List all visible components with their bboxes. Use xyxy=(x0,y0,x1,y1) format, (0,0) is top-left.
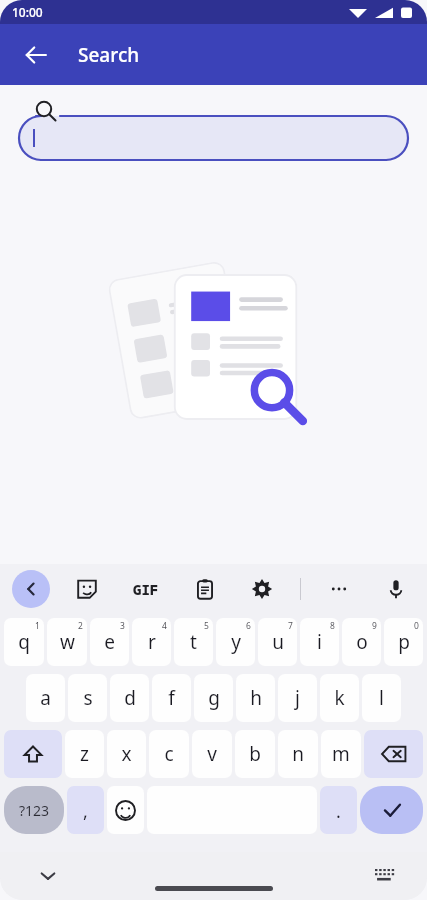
staticText: s xyxy=(83,685,93,711)
button[interactable]: Back xyxy=(14,33,58,77)
button[interactable]: a xyxy=(26,674,65,722)
button[interactable]: d xyxy=(110,674,149,722)
button[interactable]: , xyxy=(67,786,104,834)
button[interactable]: Hide keyboard xyxy=(28,856,68,896)
staticText: t xyxy=(190,629,197,655)
staticText: v xyxy=(207,741,217,767)
staticText: 2 xyxy=(78,620,83,632)
staticText: l xyxy=(379,685,384,711)
button[interactable]: More options xyxy=(320,570,358,608)
button[interactable]: . xyxy=(320,786,357,834)
button[interactable]: l xyxy=(362,674,401,722)
button[interactable]: m xyxy=(321,730,361,778)
staticText: 3 xyxy=(120,620,125,632)
staticText: 6 xyxy=(246,620,251,632)
staticText: x xyxy=(121,741,132,767)
button[interactable]: c xyxy=(149,730,189,778)
staticText: k xyxy=(334,685,345,711)
staticText: GIF xyxy=(133,580,159,599)
button[interactable]: e xyxy=(90,618,129,666)
staticText: b xyxy=(249,741,261,767)
button[interactable]: Shift xyxy=(4,730,62,778)
staticText: 7 xyxy=(288,620,293,632)
staticText: 0 xyxy=(414,620,419,632)
staticText: Search xyxy=(78,42,140,68)
button[interactable]: Back xyxy=(12,570,50,608)
button[interactable]: n xyxy=(278,730,318,778)
staticText: g xyxy=(208,685,220,711)
button[interactable]: z xyxy=(65,730,104,778)
button[interactable]: h xyxy=(236,674,275,722)
staticText: a xyxy=(40,685,51,711)
staticText: q xyxy=(18,629,30,655)
button[interactable]: s xyxy=(68,674,107,722)
button[interactable]: p xyxy=(384,618,423,666)
button[interactable]: o xyxy=(342,618,381,666)
staticText: n xyxy=(292,741,304,767)
button[interactable]: GIF xyxy=(124,570,168,608)
staticText: e xyxy=(104,629,115,655)
staticText: u xyxy=(272,629,284,655)
staticText: 1 xyxy=(35,620,40,632)
button[interactable]: t xyxy=(174,618,213,666)
staticText: j xyxy=(295,685,300,711)
button[interactable]: k xyxy=(320,674,359,722)
staticText: d xyxy=(124,685,136,711)
staticText: r xyxy=(148,629,156,655)
button[interactable]: Stickers xyxy=(68,570,106,608)
staticText: ?123 xyxy=(19,801,50,820)
button[interactable]: Clipboard xyxy=(186,570,224,608)
staticText: 9 xyxy=(372,620,377,632)
staticText: w xyxy=(60,629,75,655)
staticText: c xyxy=(164,741,174,767)
button[interactable]: Settings xyxy=(243,570,281,608)
staticText: 8 xyxy=(330,620,335,632)
button[interactable]: g xyxy=(194,674,233,722)
button[interactable]: u xyxy=(258,618,297,666)
staticText: 5 xyxy=(204,620,209,632)
staticText: . xyxy=(336,799,341,824)
button[interactable]: Backspace xyxy=(364,730,423,778)
button[interactable]: f xyxy=(152,674,191,722)
staticText: o xyxy=(356,629,368,655)
button[interactable]: Voice input xyxy=(377,570,415,608)
button[interactable]: y xyxy=(216,618,255,666)
button[interactable]: j xyxy=(278,674,317,722)
staticText: 4 xyxy=(162,620,167,632)
staticText: z xyxy=(80,741,89,767)
button[interactable]: q xyxy=(4,618,44,666)
button[interactable]: ?123 xyxy=(4,786,64,834)
button[interactable]: x xyxy=(107,730,146,778)
staticText: p xyxy=(398,629,410,655)
staticText: h xyxy=(250,685,262,711)
staticText: m xyxy=(332,741,350,767)
button[interactable]: i xyxy=(300,618,339,666)
button[interactable]: w xyxy=(47,618,87,666)
staticText: , xyxy=(83,799,88,824)
button[interactable]: Enter xyxy=(360,786,423,834)
button[interactable]: v xyxy=(192,730,232,778)
staticText: f xyxy=(168,685,175,711)
staticText: 10:00 xyxy=(12,4,43,20)
button[interactable]: r xyxy=(132,618,171,666)
button[interactable]: Emoji xyxy=(107,786,144,834)
button[interactable]: Search input xyxy=(19,116,408,160)
button[interactable]: b xyxy=(235,730,275,778)
button[interactable]: Switch keyboard xyxy=(365,856,405,896)
staticText: i xyxy=(317,629,322,655)
staticText: y xyxy=(231,629,241,655)
